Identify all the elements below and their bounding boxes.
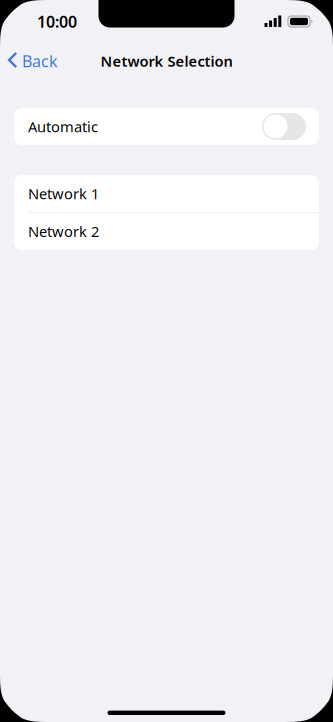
staticText: Back (22, 50, 58, 72)
button[interactable]: Network 2 (14, 213, 319, 250)
staticText: Network 1 (28, 184, 99, 203)
button[interactable]: Network 1 (14, 175, 319, 212)
staticText: 10:00 (37, 11, 77, 32)
button[interactable]: Back (0, 43, 66, 79)
staticText: Automatic (28, 117, 98, 136)
staticText: Network Selection (100, 51, 232, 71)
staticText: Network 2 (28, 222, 99, 241)
button[interactable]: Automatic (14, 108, 319, 145)
